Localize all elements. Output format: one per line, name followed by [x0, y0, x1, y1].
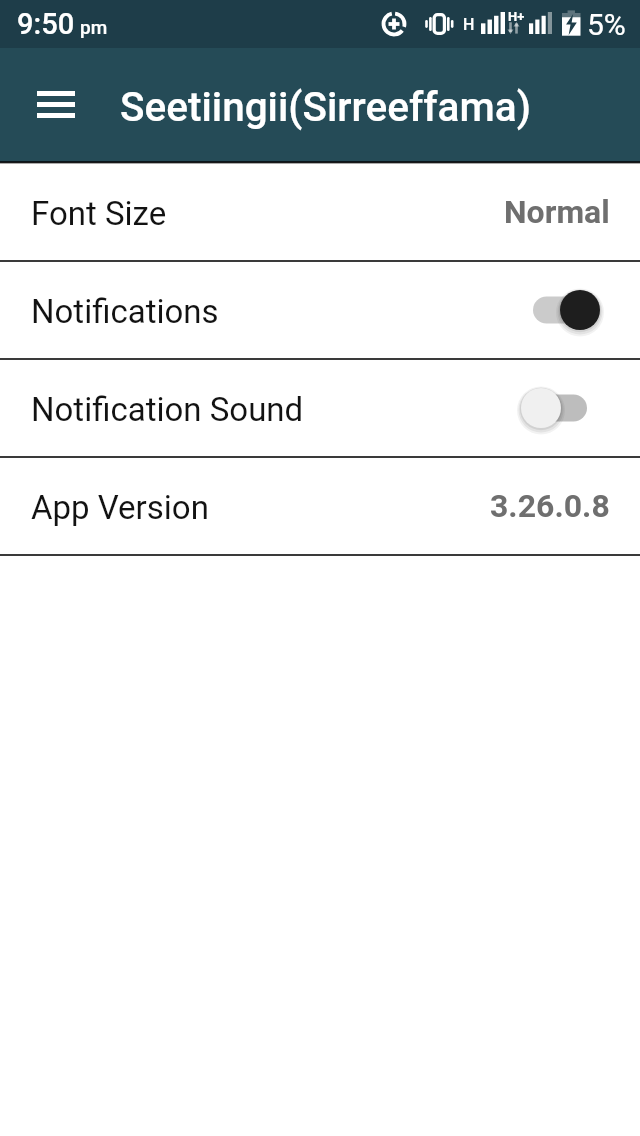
- button[interactable]: Font Size: [0, 164, 640, 260]
- staticText: Font Size: [31, 194, 167, 233]
- button[interactable]: Notifications: [0, 262, 640, 358]
- staticText: Notifications: [31, 292, 219, 331]
- staticText: 3.26.0.8: [490, 487, 610, 525]
- staticText: 9:50: [17, 7, 75, 41]
- staticText: 5%: [587, 7, 626, 42]
- button[interactable]: Notifications toggle: [518, 288, 600, 332]
- button[interactable]: Notification sound toggle: [518, 386, 600, 430]
- staticText: App Version: [31, 488, 209, 527]
- button[interactable]: Notification Sound: [0, 360, 640, 456]
- staticText: Seetiingii(Sirreeffama): [120, 83, 532, 130]
- staticText: H+: [508, 9, 525, 24]
- button[interactable]: App Version: [0, 458, 640, 554]
- staticText: H: [463, 15, 475, 34]
- staticText: Normal: [504, 193, 610, 231]
- staticText: pm: [80, 16, 108, 38]
- staticText: Notification Sound: [31, 390, 304, 429]
- button[interactable]: Menu: [28, 77, 84, 133]
